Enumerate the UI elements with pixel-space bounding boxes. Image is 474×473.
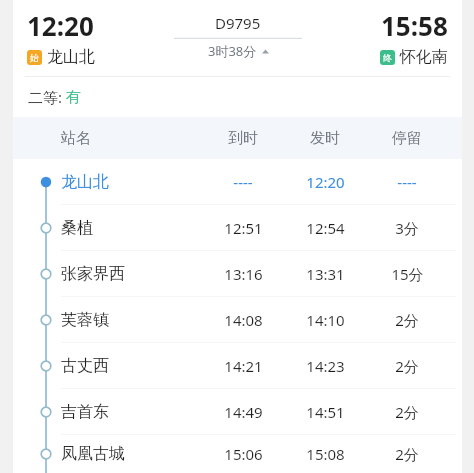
staticText: ----	[233, 172, 253, 192]
button[interactable]: 古丈西	[13, 343, 462, 388]
staticText: 12:54	[306, 218, 345, 238]
button[interactable]: 龙山北	[13, 159, 462, 204]
staticText: 2分	[395, 310, 419, 330]
staticText: 15:06	[224, 444, 263, 464]
staticText: 3分	[395, 218, 419, 238]
staticText: 14:49	[224, 402, 263, 422]
staticText: 15:58	[381, 8, 448, 43]
staticText: 15:08	[306, 444, 345, 464]
staticText: 12:20	[306, 172, 345, 192]
button[interactable]: 桑植	[13, 205, 462, 250]
staticText: 15分	[391, 264, 424, 284]
staticText: 2分	[395, 402, 419, 422]
staticText: 停留	[392, 129, 422, 148]
staticText: 14:21	[224, 356, 263, 376]
staticText: 龙山北	[47, 47, 95, 67]
staticText: 凤凰古城	[61, 444, 125, 464]
staticText: 12:20	[27, 8, 94, 43]
staticText: 站名	[61, 129, 91, 148]
staticText: 14:10	[306, 310, 345, 330]
button[interactable]: 凤凰古城	[13, 435, 462, 473]
staticText: 13:31	[306, 264, 345, 284]
staticText: 14:23	[306, 356, 345, 376]
staticText: 14:08	[224, 310, 263, 330]
staticText: 吉首东	[61, 402, 109, 422]
button[interactable]: 吉首东	[13, 389, 462, 434]
staticText: 二等:	[28, 87, 63, 107]
button[interactable]: 张家界西	[13, 251, 462, 296]
staticText: 2分	[395, 356, 419, 376]
staticText: 2分	[395, 444, 419, 464]
staticText: 到时	[228, 129, 258, 148]
staticText: ----	[397, 172, 417, 192]
staticText: 3时38分	[208, 42, 257, 60]
staticText: 14:51	[306, 402, 345, 422]
button[interactable]: 芙蓉镇	[13, 297, 462, 342]
staticText: 终	[383, 52, 392, 63]
staticText: 始	[30, 52, 39, 63]
staticText: D9795	[215, 13, 261, 33]
staticText: 张家界西	[61, 264, 125, 284]
button[interactable]: 12:20	[13, 0, 462, 76]
staticText: 发时	[310, 129, 340, 148]
staticText: 怀化南	[400, 47, 448, 67]
staticText: 芙蓉镇	[61, 310, 109, 330]
staticText: 桑植	[61, 218, 93, 238]
button[interactable]: 二等:	[13, 77, 462, 117]
staticText: 有	[66, 88, 81, 107]
staticText: 12:51	[224, 218, 263, 238]
staticText: 古丈西	[61, 356, 109, 376]
staticText: 龙山北	[61, 172, 109, 192]
staticText: 13:16	[224, 264, 263, 284]
